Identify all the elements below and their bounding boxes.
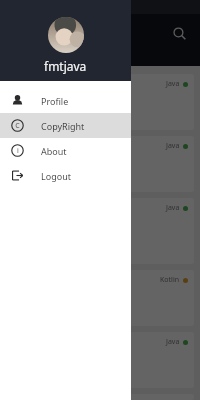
staticText: C — [15, 121, 20, 131]
staticText: About — [41, 145, 67, 157]
button[interactable]: Kotlin — [6, 270, 194, 326]
button[interactable]: Java — [6, 332, 194, 388]
staticText: Java — [166, 337, 180, 347]
staticText: Profile — [41, 95, 69, 107]
staticText: square — [21, 115, 44, 125]
button[interactable]: Java — [6, 198, 194, 264]
staticText: Java — [166, 203, 180, 213]
button[interactable]: Profile photo — [48, 17, 84, 53]
staticText: Logout — [41, 170, 71, 182]
button[interactable]: Java — [6, 74, 194, 130]
staticText: Kotlin — [160, 275, 180, 285]
button[interactable]: Java — [6, 394, 194, 400]
button[interactable]: Logout — [0, 163, 131, 188]
button[interactable]: Profile — [0, 88, 131, 113]
button[interactable]: C — [0, 113, 131, 138]
staticText: Tools and libraries for Android and Java — [12, 153, 94, 174]
staticText: fmtjava — [44, 58, 87, 74]
staticText: A curated list of awesome Java framework… — [12, 91, 126, 112]
staticText: square — [21, 177, 44, 187]
button[interactable]: Java — [6, 136, 194, 192]
button[interactable]: Search — [166, 20, 192, 46]
staticText: i — [17, 146, 19, 156]
staticText: CopyRight — [41, 120, 85, 132]
staticText: Java — [166, 79, 180, 89]
staticText: Java — [166, 141, 180, 151]
button[interactable]: i — [0, 138, 131, 163]
